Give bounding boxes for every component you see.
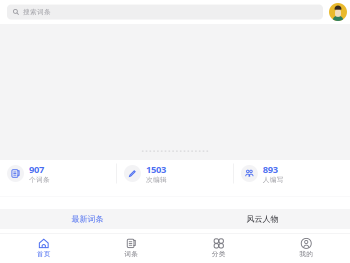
staticText: 首页 <box>37 250 51 258</box>
button[interactable]: Profile <box>329 3 347 21</box>
button[interactable]: 最新词条 <box>0 209 175 229</box>
button[interactable]: 风云人物 <box>175 209 350 229</box>
staticText: 风云人物 <box>246 214 278 224</box>
staticText: 个词条 <box>29 176 50 184</box>
staticText: 搜索词条 <box>23 8 51 16</box>
button[interactable]: 首页 <box>0 232 87 263</box>
button[interactable]: 分类 <box>175 232 262 263</box>
button[interactable]: 我的 <box>262 232 350 263</box>
staticText: 人编写 <box>263 176 284 184</box>
staticText: 最新词条 <box>71 214 103 224</box>
staticText: 893 <box>263 163 278 176</box>
staticText: 词条 <box>124 250 138 258</box>
staticText: 1503 <box>146 163 166 176</box>
staticText: 分类 <box>212 250 226 258</box>
staticText: 907 <box>29 163 44 176</box>
button[interactable]: 词条 <box>87 232 175 263</box>
staticText: 次编辑 <box>146 176 167 184</box>
button[interactable]: 搜索词条 <box>7 4 323 19</box>
staticText: 我的 <box>299 250 313 258</box>
